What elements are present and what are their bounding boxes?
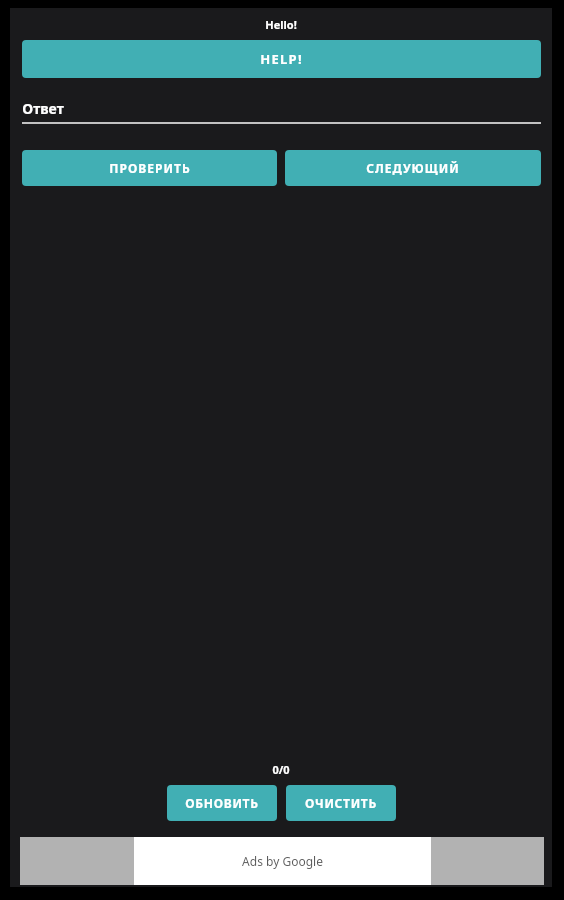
button[interactable]: ОБНОВИТЬ <box>167 785 277 821</box>
button[interactable]: ОЧИСТИТЬ <box>286 785 396 821</box>
button[interactable]: Ads by Google advertisement <box>20 837 544 885</box>
staticText: Ads by Google <box>242 853 323 869</box>
staticText: Hello! <box>265 17 297 32</box>
button[interactable]: HELP! <box>22 40 541 78</box>
button[interactable]: Ответ <box>22 97 541 119</box>
staticText: ПРОВЕРИТЬ <box>109 160 191 176</box>
staticText: 0/0 <box>272 762 290 777</box>
staticText: СЛЕДУЮЩИЙ <box>366 160 460 176</box>
staticText: ОБНОВИТЬ <box>185 795 259 811</box>
button[interactable]: СЛЕДУЮЩИЙ <box>285 150 541 186</box>
staticText: ОЧИСТИТЬ <box>305 795 377 811</box>
staticText: Ответ <box>22 99 64 118</box>
staticText: HELP! <box>260 50 303 68</box>
button[interactable]: ПРОВЕРИТЬ <box>22 150 277 186</box>
